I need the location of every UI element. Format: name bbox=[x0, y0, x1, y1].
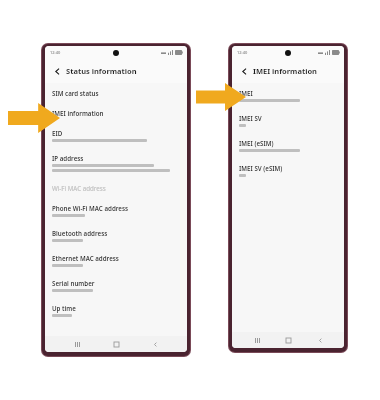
button[interactable]: Ethernet MAC address bbox=[45, 248, 187, 273]
staticText: IMEI SV (eSIM) bbox=[239, 164, 283, 172]
staticText: IP address bbox=[52, 154, 84, 162]
button[interactable]: Bluetooth address bbox=[45, 223, 187, 248]
button[interactable]: Wi-Fi MAC address bbox=[45, 178, 187, 198]
staticText: Serial number bbox=[52, 279, 95, 287]
staticText: Wi-Fi MAC address bbox=[52, 184, 106, 192]
staticText: IMEI SV bbox=[239, 114, 262, 122]
staticText: IMEI information bbox=[253, 66, 317, 76]
staticText: Up time bbox=[52, 304, 76, 312]
button[interactable]: SIM card status bbox=[45, 83, 187, 103]
button[interactable]: IP address bbox=[45, 148, 187, 178]
staticText: Status information bbox=[66, 66, 137, 76]
staticText: IMEI (eSIM) bbox=[239, 139, 274, 147]
button[interactable]: Home bbox=[109, 337, 123, 351]
button[interactable]: Home bbox=[281, 333, 295, 347]
button[interactable]: IMEI information bbox=[45, 103, 187, 123]
button[interactable]: IMEI (eSIM) bbox=[232, 133, 344, 158]
staticText: Bluetooth address bbox=[52, 229, 108, 237]
button[interactable]: EID bbox=[45, 123, 187, 148]
staticText: SIM card status bbox=[52, 89, 99, 97]
button[interactable]: Recents bbox=[70, 337, 84, 351]
staticText: 12:40 bbox=[50, 50, 61, 55]
button[interactable]: Back bbox=[238, 65, 250, 77]
staticText: Phone Wi-Fi MAC address bbox=[52, 204, 129, 212]
staticText: EID bbox=[52, 129, 63, 137]
button[interactable]: IMEI bbox=[232, 83, 344, 108]
staticText: Ethernet MAC address bbox=[52, 254, 119, 262]
staticText: IMEI bbox=[239, 89, 253, 97]
button[interactable]: IMEI SV bbox=[232, 108, 344, 133]
button[interactable]: Recents bbox=[250, 333, 264, 347]
button[interactable]: Back bbox=[148, 337, 162, 351]
button[interactable]: Phone Wi-Fi MAC address bbox=[45, 198, 187, 223]
button[interactable]: Back bbox=[313, 333, 327, 347]
staticText: 12:40 bbox=[237, 50, 248, 55]
button[interactable]: Up time bbox=[45, 298, 187, 323]
button[interactable]: IMEI SV (eSIM) bbox=[232, 158, 344, 183]
staticText: IMEI information bbox=[52, 109, 104, 117]
button[interactable]: Serial number bbox=[45, 273, 187, 298]
button[interactable]: Back bbox=[51, 65, 63, 77]
